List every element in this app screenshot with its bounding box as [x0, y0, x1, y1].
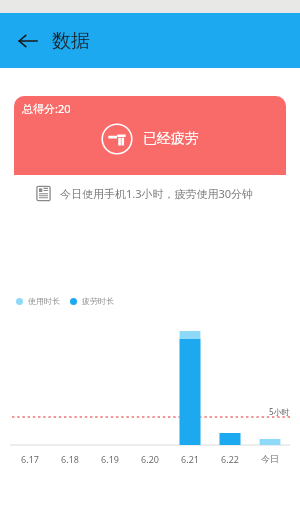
staticText: 6.19	[101, 453, 119, 465]
staticText: 6.21	[181, 453, 199, 465]
staticText: 今日	[261, 453, 279, 464]
staticText: 6.17	[21, 453, 39, 465]
button[interactable]: Back	[8, 21, 48, 61]
staticText: 6.20	[141, 453, 159, 465]
staticText: 数据	[52, 29, 90, 53]
staticText: 6.22	[221, 453, 239, 465]
staticText: 使用时长	[28, 296, 60, 306]
button[interactable]: 总得分:20	[14, 96, 286, 212]
staticText: 已经疲劳	[143, 130, 199, 148]
button[interactable]: 今日使用手机1.3小时，疲劳使用30分钟	[14, 175, 286, 212]
staticText: 疲劳时长	[82, 296, 114, 306]
staticText: 6.18	[61, 453, 79, 465]
staticText: 5小时	[269, 406, 290, 417]
staticText: 总得分:20	[22, 101, 71, 116]
staticText: 今日使用手机1.3小时，疲劳使用30分钟	[60, 186, 254, 201]
